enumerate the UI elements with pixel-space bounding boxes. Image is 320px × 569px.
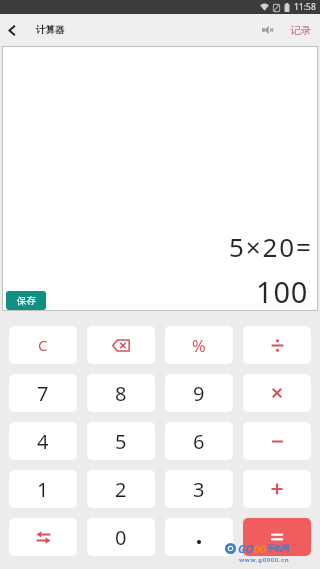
staticText: 计算器 — [36, 24, 65, 36]
button[interactable]: 4 — [9, 422, 77, 460]
staticText: 11:58 — [294, 1, 316, 13]
button[interactable]: 6 — [165, 422, 233, 460]
staticText: 100 — [256, 272, 309, 311]
button[interactable] — [256, 18, 280, 42]
button[interactable]: 9 — [165, 374, 233, 412]
button[interactable]: 保存 — [6, 291, 46, 310]
button[interactable]: 1 — [9, 470, 77, 508]
button[interactable] — [165, 518, 233, 556]
button[interactable]: C — [9, 326, 77, 364]
button[interactable] — [243, 470, 311, 508]
staticText: 手机网 — [267, 544, 290, 553]
staticText: www.g0000.cn — [239, 556, 290, 564]
staticText: 1 — [37, 476, 49, 503]
staticText: 5×20= — [229, 229, 313, 264]
button[interactable]: 3 — [165, 470, 233, 508]
button[interactable] — [87, 326, 155, 364]
button[interactable] — [243, 326, 311, 364]
staticText: 3 — [193, 476, 205, 503]
button[interactable]: 5 — [87, 422, 155, 460]
staticText: 保存 — [17, 295, 36, 307]
staticText: 4 — [37, 428, 49, 455]
staticText: 2 — [115, 476, 127, 503]
staticText: 8 — [115, 380, 127, 407]
button[interactable]: 记录 — [290, 14, 311, 46]
button[interactable]: 7 — [9, 374, 77, 412]
button[interactable]: 2 — [87, 470, 155, 508]
button[interactable]: 0 — [87, 518, 155, 556]
button[interactable]: % — [165, 326, 233, 364]
staticText: C — [38, 335, 48, 355]
staticText: 0 — [115, 524, 127, 551]
button[interactable] — [0, 14, 24, 46]
button[interactable] — [243, 374, 311, 412]
staticText: GO — [238, 541, 254, 556]
staticText: 记录 — [290, 24, 311, 37]
button[interactable] — [243, 422, 311, 460]
staticText: 6 — [193, 428, 205, 455]
button[interactable] — [9, 518, 77, 556]
staticText: 00 — [254, 541, 267, 556]
button[interactable] — [243, 518, 311, 556]
staticText: % — [192, 334, 206, 356]
button[interactable]: 8 — [87, 374, 155, 412]
staticText: 5 — [115, 428, 127, 455]
staticText: 9 — [193, 380, 205, 407]
staticText: 7 — [37, 380, 49, 407]
